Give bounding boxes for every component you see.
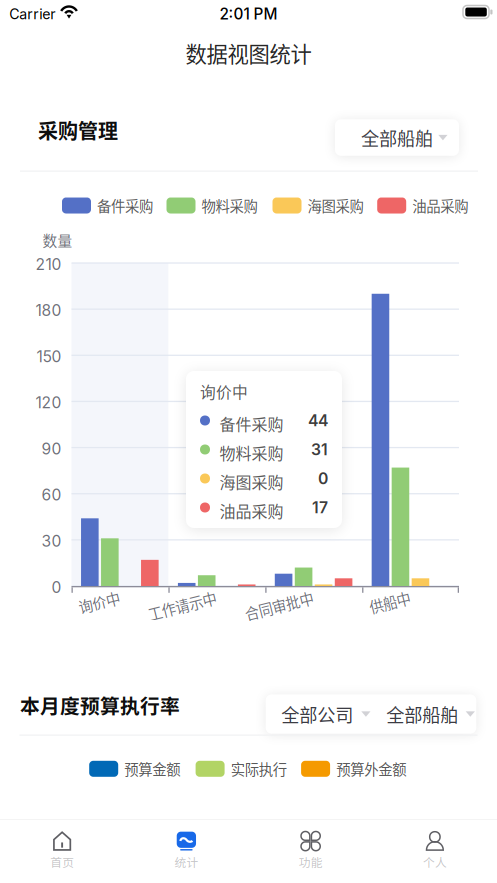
button[interactable]: 首页	[0, 820, 124, 883]
staticText: 备件采购	[219, 412, 283, 435]
staticText: 60	[41, 485, 61, 504]
staticText: 物料采购	[202, 195, 258, 216]
button[interactable]: 全部船舶	[370, 694, 476, 734]
staticText: 预算外金额	[336, 758, 406, 779]
staticText: 首页	[50, 853, 74, 870]
staticText: 工作请示中	[147, 595, 217, 616]
staticText: 统计	[174, 853, 198, 870]
staticText: 180	[35, 301, 61, 320]
staticText: 30	[41, 532, 61, 550]
staticText: 询价中	[78, 592, 120, 613]
staticText: 44	[308, 411, 328, 430]
staticText: 功能	[299, 853, 323, 870]
staticText: 预算金额	[124, 758, 180, 779]
button[interactable]: 油品采购	[377, 197, 433, 213]
button[interactable]: 个人	[373, 820, 497, 883]
staticText: 150	[36, 347, 61, 366]
staticText: 数量	[42, 229, 72, 251]
staticText: 采购管理	[38, 115, 118, 144]
staticText: 实际执行	[231, 758, 287, 779]
staticText: 210	[35, 255, 61, 274]
staticText: 全部船舶	[361, 124, 433, 151]
staticText: 90	[41, 439, 61, 458]
staticText: 询价中	[200, 380, 248, 403]
staticText: 31	[311, 440, 328, 459]
staticText: 全部公司	[281, 701, 353, 727]
staticText: 全部船舶	[386, 701, 458, 727]
staticText: 0	[318, 469, 328, 488]
staticText: 油品采购	[219, 499, 283, 522]
staticText: 0	[51, 578, 61, 597]
staticText: 17	[312, 498, 328, 517]
staticText: 2:01 PM	[219, 5, 277, 23]
staticText: 油品采购	[412, 195, 468, 216]
staticText: 本月度预算执行率	[20, 691, 180, 719]
staticText: 合同审批中	[244, 595, 314, 616]
button[interactable]: 预算金额	[89, 761, 145, 777]
staticText: 海图采购	[219, 470, 283, 493]
button[interactable]: 全部公司	[266, 694, 370, 734]
button[interactable]: 全部船舶	[335, 119, 459, 156]
staticText: Carrier	[9, 6, 55, 23]
staticText: 物料采购	[219, 441, 283, 464]
button[interactable]: 预算外金额	[301, 761, 371, 777]
button[interactable]: 统计	[124, 820, 248, 883]
staticText: 备件采购	[97, 195, 153, 216]
staticText: 数据视图统计	[185, 38, 311, 68]
staticText: 120	[35, 393, 61, 412]
button[interactable]: 物料采购	[166, 197, 222, 213]
staticText: 供船中	[369, 592, 411, 613]
staticText: 海图采购	[308, 195, 364, 216]
button[interactable]: 功能	[248, 820, 373, 883]
button[interactable]: 海图采购	[272, 197, 328, 213]
button[interactable]: 实际执行	[196, 761, 252, 777]
button[interactable]: 备件采购	[62, 197, 118, 213]
staticText: 个人	[423, 853, 447, 870]
